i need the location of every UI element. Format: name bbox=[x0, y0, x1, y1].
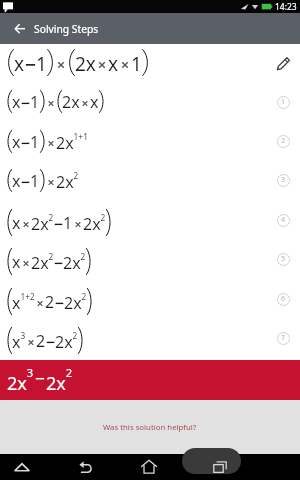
staticText: 1 bbox=[30, 170, 40, 192]
staticText: x bbox=[12, 91, 21, 113]
staticText: x bbox=[12, 170, 21, 192]
staticText: 2x2 bbox=[64, 291, 87, 314]
button[interactable]: Back bbox=[0, 13, 29, 44]
staticText: 2x3 bbox=[7, 365, 34, 395]
button[interactable]: x3 bbox=[0, 318, 300, 357]
staticText: 2x2 bbox=[46, 365, 73, 395]
button[interactable]: x bbox=[0, 121, 300, 160]
staticText: 2x2 bbox=[31, 212, 54, 235]
staticText: Solving Steps bbox=[34, 22, 99, 36]
button[interactable]: 2x3 bbox=[0, 360, 300, 400]
staticText: 1 bbox=[281, 97, 286, 107]
button[interactable]: Step 4 bbox=[271, 208, 295, 232]
staticText: 2x bbox=[75, 51, 96, 77]
button[interactable]: x1+2 bbox=[0, 279, 300, 318]
staticText: x3 bbox=[12, 330, 26, 353]
button[interactable]: Step 5 bbox=[271, 247, 295, 271]
staticText: 2x2 bbox=[31, 251, 54, 274]
staticText: 7 bbox=[281, 333, 286, 343]
staticText: x bbox=[14, 51, 25, 77]
button[interactable]: x bbox=[0, 200, 300, 239]
button[interactable]: Recents bbox=[186, 454, 254, 480]
staticText: 1 bbox=[30, 131, 40, 153]
staticText: Was this solution helpful? bbox=[103, 422, 197, 433]
staticText: 1 bbox=[131, 51, 142, 77]
staticText: 1 bbox=[63, 212, 73, 234]
staticText: 2x bbox=[62, 91, 80, 113]
staticText: x1+2 bbox=[12, 291, 35, 314]
staticText: 2 bbox=[45, 291, 55, 313]
button[interactable]: Collapse keyboard bbox=[0, 454, 56, 480]
staticText: x bbox=[12, 131, 21, 153]
staticText: x bbox=[12, 212, 21, 234]
staticText: 4 bbox=[281, 215, 286, 225]
staticText: 5 bbox=[281, 254, 286, 264]
button[interactable]: Back bbox=[52, 454, 120, 480]
staticText: 2x2 bbox=[55, 330, 78, 353]
staticText: 1 bbox=[36, 51, 47, 77]
staticText: x bbox=[12, 251, 21, 273]
staticText: x bbox=[90, 91, 99, 113]
staticText: 1 bbox=[30, 91, 40, 113]
staticText: 2x1+1 bbox=[56, 131, 88, 154]
staticText: 14:23 bbox=[275, 1, 297, 13]
staticText: 2x2 bbox=[83, 212, 106, 235]
staticText: 2x2 bbox=[63, 251, 86, 274]
staticText: 3 bbox=[281, 175, 286, 185]
button[interactable]: Step 3 bbox=[271, 168, 295, 192]
button[interactable]: x bbox=[0, 160, 300, 199]
button[interactable]: x bbox=[0, 239, 300, 278]
staticText: 2 bbox=[36, 330, 46, 352]
button[interactable]: Step 6 bbox=[271, 287, 295, 311]
button[interactable]: Home bbox=[115, 454, 183, 480]
button[interactable]: Step 1 bbox=[271, 90, 295, 114]
staticText: 6 bbox=[281, 294, 286, 304]
staticText: 2 bbox=[281, 136, 286, 146]
staticText: x bbox=[108, 51, 119, 77]
button[interactable]: x bbox=[0, 44, 300, 82]
button[interactable]: Edit bbox=[271, 51, 295, 75]
button[interactable]: Step 7 bbox=[271, 326, 295, 350]
button[interactable]: x bbox=[0, 82, 300, 121]
staticText: 2x2 bbox=[56, 170, 79, 193]
button[interactable]: Step 2 bbox=[271, 129, 295, 153]
